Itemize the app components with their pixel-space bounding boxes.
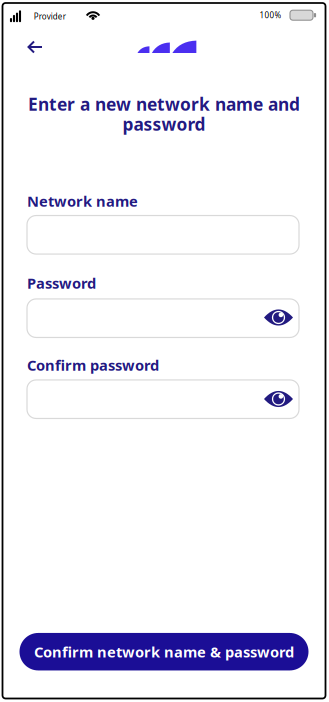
staticText: 100% <box>259 10 281 20</box>
button[interactable]: Back <box>20 33 50 61</box>
staticText: password <box>122 112 205 135</box>
button[interactable]: Confirm network name & password <box>19 633 308 670</box>
staticText: Provider <box>34 11 66 22</box>
button[interactable]: Show password <box>263 307 293 327</box>
button[interactable]: Password <box>27 299 299 337</box>
button[interactable]: Confirm password <box>27 380 299 418</box>
button[interactable]: Show confirm password <box>263 389 293 409</box>
staticText: Password <box>27 273 96 293</box>
staticText: Network name <box>27 191 138 211</box>
staticText: Confirm network name & password <box>34 642 294 661</box>
button[interactable]: Network name <box>27 216 299 254</box>
staticText: Confirm password <box>27 355 159 375</box>
staticText: Enter a new network name and <box>28 92 300 115</box>
